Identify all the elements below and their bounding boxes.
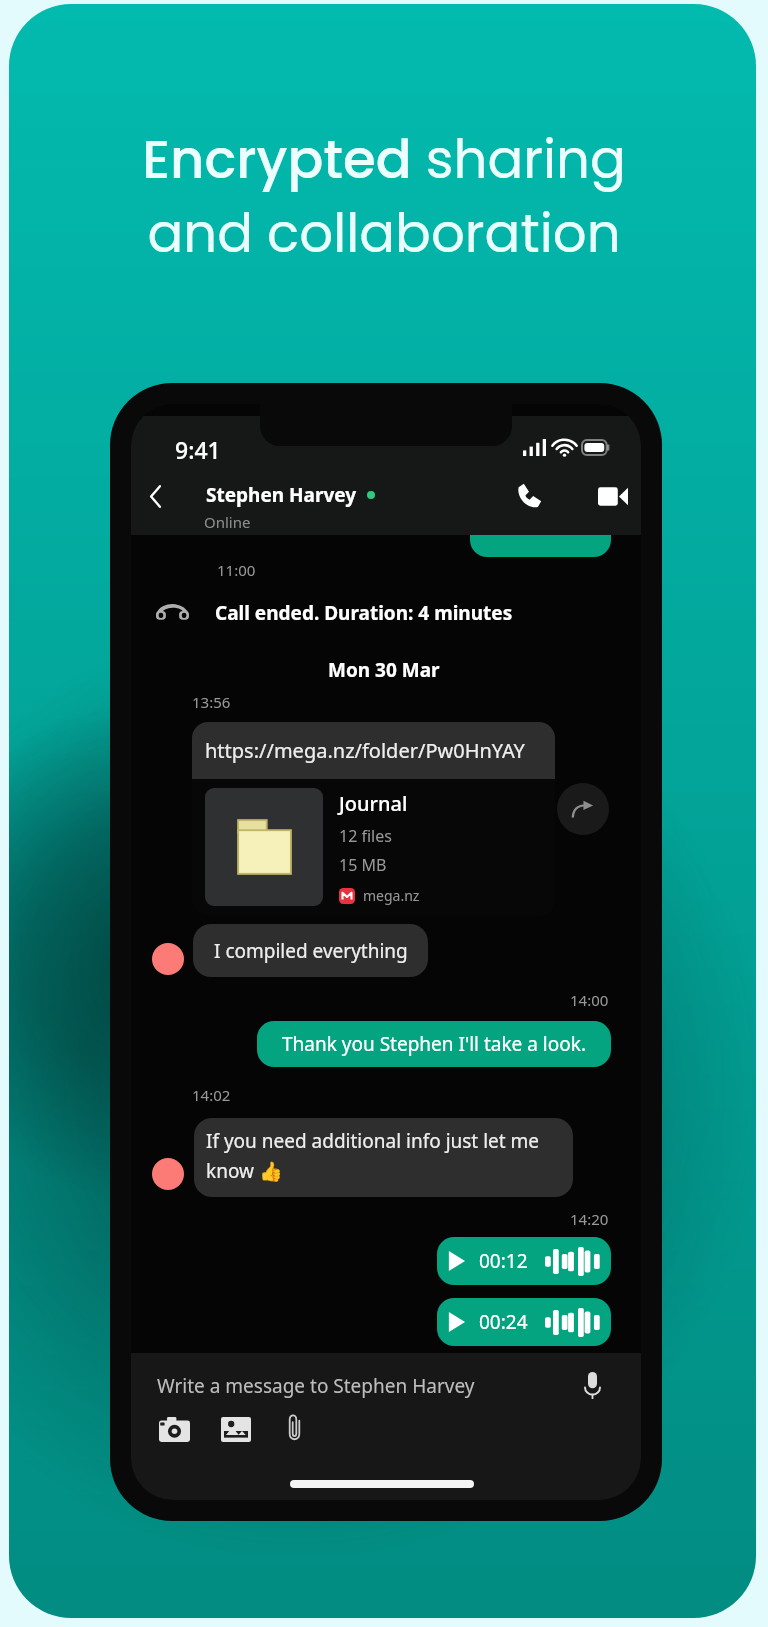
staticText: Online [204, 512, 251, 532]
staticText: 13:56 [192, 692, 231, 712]
button[interactable]: If you need additional info just let me … [194, 1118, 573, 1197]
button[interactable]: I compiled everything [193, 924, 428, 977]
staticText: Call ended. Duration: 4 minutes [215, 600, 513, 626]
staticText: mega.nz [363, 886, 420, 905]
staticText: 00:24 [479, 1309, 528, 1335]
staticText: Thank you Stephen I'll take a look. [282, 1031, 587, 1057]
staticText: 12 files [339, 825, 392, 847]
staticText: If you need additional info just let me … [206, 1128, 573, 1184]
button[interactable]: Back [131, 470, 181, 522]
staticText: 14:00 [570, 990, 609, 1010]
button[interactable]: Camera [155, 1410, 193, 1448]
staticText: 11:00 [217, 560, 256, 580]
button[interactable]: Video call [587, 470, 639, 522]
button[interactable]: 00:24 [437, 1298, 611, 1346]
staticText: Write a message to Stephen Harvey [157, 1373, 475, 1399]
staticText: 9:41 [175, 434, 221, 465]
staticText: Journal [339, 790, 408, 817]
staticText: https://mega.nz/folder/Pw0HnYAY [205, 737, 525, 764]
button[interactable]: Attach [275, 1408, 313, 1446]
button[interactable]: Forward [557, 783, 609, 835]
staticText: Stephen Harvey [206, 482, 357, 508]
button[interactable]: Gallery [217, 1410, 255, 1448]
button[interactable]: Call [503, 470, 555, 522]
staticText: I compiled everything [214, 938, 408, 964]
staticText: 00:12 [479, 1248, 528, 1274]
button[interactable]: 00:12 [437, 1237, 611, 1285]
staticText: 14:02 [192, 1085, 231, 1105]
button[interactable]: Thank you Stephen I'll take a look. [257, 1021, 611, 1067]
button[interactable]: Record voice message [574, 1367, 610, 1403]
button[interactable]: https://mega.nz/folder/Pw0HnYAY [192, 722, 555, 916]
staticText: 15 MB [339, 854, 387, 876]
staticText: Encrypted sharing [142, 122, 626, 196]
staticText: Mon 30 Mar [328, 657, 440, 683]
staticText: 14:20 [570, 1209, 609, 1229]
staticText: and collaboration [147, 196, 621, 270]
